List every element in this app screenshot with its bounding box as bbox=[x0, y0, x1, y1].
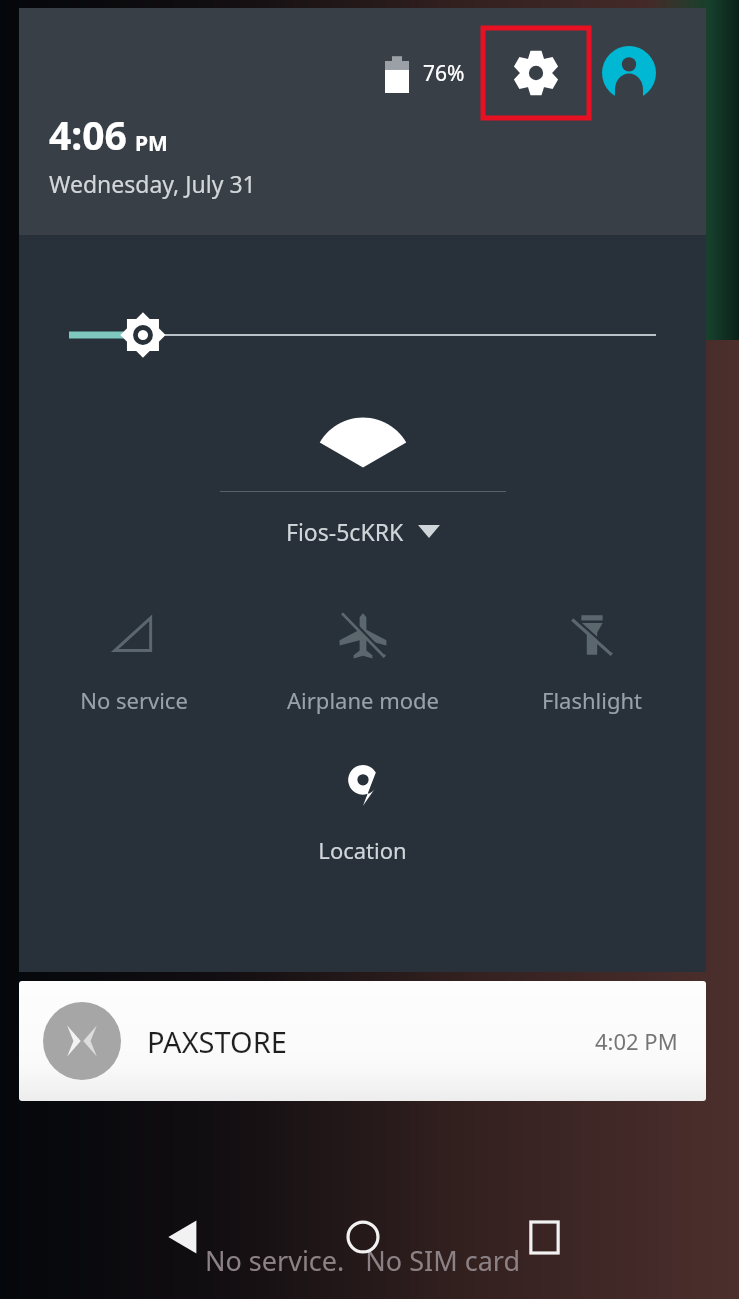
button[interactable]: Location bbox=[248, 755, 477, 869]
button[interactable]: No service bbox=[19, 605, 248, 719]
staticText: 76% bbox=[423, 59, 465, 88]
button[interactable]: Home bbox=[331, 1205, 395, 1269]
staticText: Wednesday, July 31 bbox=[49, 168, 256, 199]
button[interactable]: PAXSTORE bbox=[19, 981, 706, 1101]
button[interactable]: Airplane mode bbox=[248, 605, 477, 719]
button[interactable]: Fios-5cKRK bbox=[220, 417, 506, 547]
staticText: Location bbox=[318, 835, 407, 865]
button[interactable]: User profile bbox=[602, 46, 656, 100]
staticText: No service. No SIM card bbox=[205, 1242, 521, 1279]
button[interactable]: Recent apps bbox=[512, 1205, 576, 1269]
button[interactable]: Back bbox=[150, 1205, 214, 1269]
staticText: PAXSTORE bbox=[147, 1022, 287, 1061]
button[interactable]: Settings bbox=[483, 28, 589, 118]
staticText: 4:02 PM bbox=[595, 1026, 678, 1056]
staticText: Fios-5cKRK bbox=[286, 516, 404, 547]
staticText: No service bbox=[80, 685, 188, 715]
staticText: Flashlight bbox=[542, 685, 642, 715]
button[interactable]: Flashlight bbox=[477, 605, 706, 719]
staticText: 4:06 bbox=[49, 108, 127, 161]
staticText: Airplane mode bbox=[287, 685, 439, 715]
staticText: PM bbox=[135, 129, 168, 158]
button[interactable] bbox=[69, 303, 656, 367]
